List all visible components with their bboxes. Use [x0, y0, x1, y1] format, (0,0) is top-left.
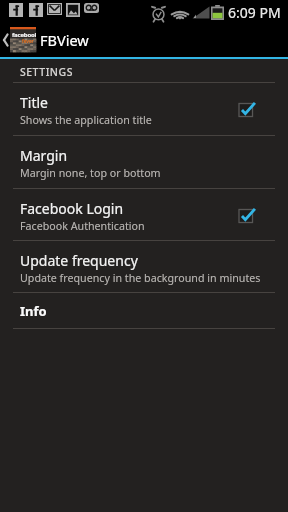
staticText: fever	[22, 38, 34, 44]
staticText: Update frequency	[20, 251, 138, 270]
staticText: Shows the application title	[20, 113, 152, 128]
staticText: 6:09 PM	[228, 3, 281, 22]
staticText: facebook	[12, 31, 36, 39]
button[interactable]: Update frequency	[0, 241, 288, 292]
staticText: Facebook Login	[20, 199, 124, 218]
button[interactable]: Margin	[0, 136, 288, 188]
button[interactable]: Info	[0, 293, 288, 328]
staticText: Title	[20, 93, 48, 112]
staticText: Info	[20, 302, 47, 320]
staticText: Facebook Authentication	[20, 219, 145, 234]
button[interactable]: Title	[0, 83, 288, 135]
staticText: Margin none, top or bottom	[20, 166, 161, 181]
button[interactable]: Navigate up	[0, 27, 38, 52]
staticText: FBView	[40, 30, 89, 50]
staticText: Update frequency in the background in mi…	[20, 271, 261, 286]
staticText: Margin	[20, 146, 68, 165]
button[interactable]: Toggle setting	[239, 97, 263, 121]
staticText: SETTINGS	[20, 65, 73, 79]
button[interactable]: Facebook Login	[0, 189, 288, 240]
button[interactable]: Toggle setting	[239, 203, 263, 227]
